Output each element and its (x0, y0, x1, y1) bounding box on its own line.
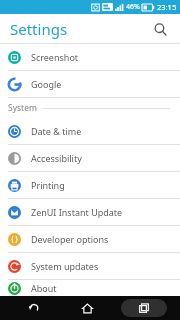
staticText: Developer options (31, 233, 109, 245)
staticText: 46% (126, 2, 140, 12)
button[interactable]: Date & time (0, 118, 180, 144)
staticText: About (31, 282, 57, 294)
staticText: Settings (10, 19, 68, 39)
button[interactable]: Printing (0, 172, 180, 198)
staticText: Date & time (31, 125, 82, 137)
button[interactable]: Search (148, 17, 172, 41)
staticText: 23:15 (157, 2, 177, 12)
button[interactable]: Home (67, 296, 107, 320)
staticText: Printing (31, 179, 65, 191)
button[interactable]: Recents (121, 299, 167, 317)
button[interactable]: Accessibility (0, 145, 180, 171)
staticText: Google (31, 78, 62, 90)
button[interactable]: Google (0, 71, 180, 97)
staticText: ZenUI Instant Update (31, 206, 123, 218)
staticText: Accessibility (31, 152, 82, 164)
button[interactable]: Back (14, 296, 54, 320)
button[interactable]: System updates (0, 253, 180, 279)
staticText: Screenshot (31, 51, 79, 63)
button[interactable]: About (0, 280, 180, 296)
button[interactable]: Developer options (0, 226, 180, 252)
button[interactable]: Screenshot (0, 44, 180, 70)
button[interactable]: ZenUI Instant Update (0, 199, 180, 225)
staticText: System updates (31, 260, 99, 272)
staticText: System (8, 102, 37, 114)
